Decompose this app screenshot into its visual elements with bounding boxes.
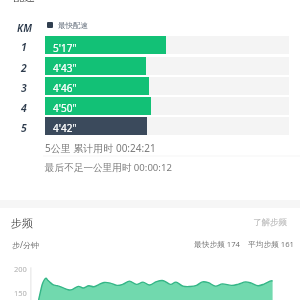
staticText: 5 <box>21 121 27 135</box>
staticText: 平均步频 161 <box>248 239 294 250</box>
staticText: 了解步频 <box>253 217 287 228</box>
staticText: KM <box>17 21 32 35</box>
button[interactable] <box>0 36 300 54</box>
button[interactable] <box>0 117 300 135</box>
staticText: 步频 <box>11 216 33 230</box>
staticText: 4 <box>21 101 27 115</box>
staticText: 200 <box>14 264 27 274</box>
staticText: 5公里 累计用时 00:24:21 <box>45 141 156 155</box>
button[interactable]: 步频 <box>11 216 33 230</box>
staticText: 1 <box>21 40 27 54</box>
button[interactable]: 了解步频 <box>253 217 287 228</box>
staticText: 4'50" <box>53 101 77 115</box>
staticText: 最后不足一公里用时 00:00:12 <box>45 161 172 174</box>
staticText: 3 <box>21 81 27 95</box>
staticText: 2 <box>21 61 27 75</box>
button[interactable] <box>0 57 300 75</box>
staticText: 4'42" <box>53 121 77 135</box>
staticText: 步/分钟 <box>12 239 39 250</box>
staticText: 5'17" <box>53 41 77 55</box>
staticText: 150 <box>14 288 27 298</box>
staticText: 配速 <box>13 0 35 4</box>
staticText: 最快配速 <box>58 21 88 30</box>
button[interactable] <box>0 97 300 115</box>
button[interactable] <box>0 77 300 95</box>
staticText: 最快步频 174 <box>194 239 240 250</box>
staticText: 4'43" <box>53 61 77 75</box>
staticText: 4'46" <box>53 81 77 95</box>
